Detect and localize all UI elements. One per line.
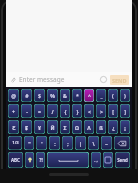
staticText: +	[12, 108, 15, 115]
button[interactable]: '	[36, 136, 47, 150]
staticText: %	[50, 92, 55, 99]
staticText: '	[41, 140, 43, 147]
staticText: }	[76, 108, 79, 115]
staticText: <	[88, 108, 91, 115]
staticText: _	[100, 92, 103, 99]
button[interactable]: ABC	[8, 152, 23, 168]
staticText: [	[112, 108, 114, 115]
staticText: \	[92, 140, 95, 147]
button[interactable]: >	[96, 104, 106, 118]
button[interactable]: _	[96, 89, 106, 102]
button[interactable]: @	[8, 89, 19, 102]
staticText: Ɛ	[12, 124, 16, 131]
button[interactable]: |	[75, 136, 86, 150]
staticText: |	[79, 140, 82, 147]
button[interactable]: ¿	[108, 120, 118, 134]
staticText: Send	[117, 157, 128, 163]
staticText: *	[76, 92, 79, 99]
staticText: 1/3	[12, 140, 19, 146]
staticText: ]	[124, 108, 126, 115]
staticText: )	[124, 92, 126, 99]
button[interactable]: Emoji keyboard	[103, 152, 113, 168]
staticText: /	[51, 108, 54, 115]
staticText: Σ	[63, 124, 67, 131]
button[interactable]: Backspace	[114, 136, 130, 150]
button[interactable]: . ,	[91, 152, 101, 168]
button[interactable]: Ω	[72, 120, 82, 134]
button[interactable]: {	[60, 104, 70, 118]
staticText: =	[38, 108, 41, 115]
button[interactable]: ¥	[34, 120, 45, 134]
button[interactable]: ]	[120, 104, 130, 118]
button[interactable]: 1/3	[8, 136, 22, 150]
button[interactable]: Space	[47, 152, 89, 168]
button[interactable]: "	[24, 136, 34, 150]
button[interactable]: Ɛ	[8, 120, 19, 134]
staticText: #	[25, 92, 29, 99]
staticText: (	[112, 92, 114, 99]
staticText: :	[54, 140, 56, 147]
staticText: &	[63, 92, 67, 99]
staticText: {	[64, 108, 67, 115]
button[interactable]: -	[21, 104, 32, 118]
button[interactable]: +	[8, 104, 19, 118]
staticText: . ,	[94, 157, 98, 163]
button[interactable]: SEND	[110, 75, 129, 85]
staticText: $	[38, 92, 41, 99]
staticText: ¿	[112, 124, 115, 131]
staticText: -	[26, 108, 28, 115]
staticText: Λ	[87, 124, 91, 131]
button[interactable]: ;	[62, 136, 73, 150]
staticText: ABC	[11, 157, 20, 163]
button[interactable]: Settings	[25, 152, 34, 168]
staticText: ß	[99, 124, 103, 131]
button[interactable]: Ɇ	[21, 120, 32, 134]
button[interactable]: Ӣ	[47, 120, 58, 134]
staticText: ^	[88, 92, 91, 99]
staticText: ;	[67, 140, 69, 147]
staticText: ¥	[38, 124, 41, 131]
button[interactable]: ß	[96, 120, 106, 134]
staticText: ~	[105, 140, 108, 147]
button[interactable]: ?!	[36, 152, 45, 168]
button[interactable]: )	[120, 89, 130, 102]
button[interactable]: $	[34, 89, 45, 102]
button[interactable]: &	[60, 89, 70, 102]
button[interactable]: (	[108, 89, 118, 102]
staticText: ¡	[124, 124, 126, 131]
button[interactable]: ~	[101, 136, 112, 150]
staticText: ?!	[39, 157, 43, 163]
button[interactable]: Σ	[60, 120, 70, 134]
staticText: >	[100, 108, 103, 115]
staticText: @	[11, 92, 16, 99]
button[interactable]: Λ	[84, 120, 94, 134]
button[interactable]: <	[84, 104, 94, 118]
staticText: "	[28, 140, 31, 147]
staticText: Ӣ	[50, 124, 55, 131]
button[interactable]: Attach	[9, 76, 17, 84]
button[interactable]: Emoji	[99, 75, 108, 84]
staticText: Enter message	[19, 75, 99, 84]
button[interactable]: [	[108, 104, 118, 118]
button[interactable]: *	[72, 89, 82, 102]
staticText: Ω	[75, 124, 79, 131]
button[interactable]: Send	[115, 152, 130, 168]
button[interactable]: %	[47, 89, 58, 102]
button[interactable]: ¡	[120, 120, 130, 134]
button[interactable]: \	[88, 136, 99, 150]
button[interactable]: ^	[84, 89, 94, 102]
button[interactable]: =	[34, 104, 45, 118]
button[interactable]: #	[21, 89, 32, 102]
button[interactable]: }	[72, 104, 82, 118]
staticText: SEND	[112, 77, 127, 84]
staticText: Ɇ	[25, 124, 28, 131]
button[interactable]: /	[47, 104, 58, 118]
button[interactable]: :	[49, 136, 60, 150]
